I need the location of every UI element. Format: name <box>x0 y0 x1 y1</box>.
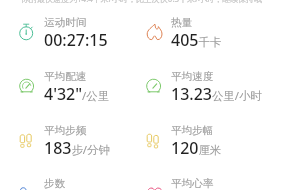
button[interactable]: 平均配速 <box>0 70 110 110</box>
button[interactable]: 平均速度 <box>127 70 262 110</box>
staticText: 平均步幅 <box>171 124 214 137</box>
staticText: 4'32"/公里 <box>44 83 110 105</box>
staticText: 183步/分钟 <box>44 137 110 159</box>
staticText: 平均心率 <box>171 177 214 190</box>
staticText: 405千卡 <box>171 29 222 51</box>
staticText: 00:27:15 <box>44 29 108 51</box>
button[interactable]: 运动时间 <box>0 16 108 56</box>
button[interactable]: 步数 <box>0 177 92 190</box>
button[interactable]: 热量 <box>127 16 222 56</box>
staticText: 热量 <box>171 16 193 29</box>
button[interactable]: 平均心率 <box>127 177 237 190</box>
staticText: 运动时间 <box>44 16 87 29</box>
staticText: 120厘米 <box>171 137 222 159</box>
staticText: 13.23公里/小时 <box>171 83 262 105</box>
staticText: 平均步频 <box>44 124 87 137</box>
staticText: 你的最快速度为14.4千米/小时，比上次快0.3千米/小时，继续保持哦 <box>21 0 263 4</box>
staticText: 平均配速 <box>44 70 87 83</box>
staticText: 步数 <box>44 177 66 190</box>
staticText: 平均速度 <box>171 70 214 83</box>
button[interactable]: 平均步频 <box>0 124 110 164</box>
button[interactable]: 平均步幅 <box>127 124 222 164</box>
